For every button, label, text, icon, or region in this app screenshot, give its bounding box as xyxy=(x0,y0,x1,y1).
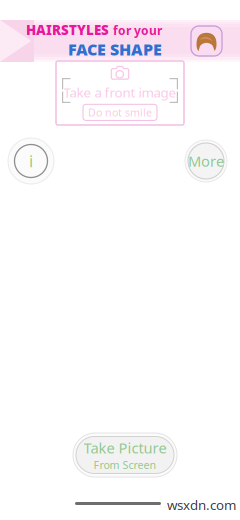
staticText: Take a front image xyxy=(63,84,176,101)
staticText: FACE SHAPE xyxy=(68,39,162,60)
button[interactable]: Hairstyle preview xyxy=(191,26,222,56)
staticText: More xyxy=(188,151,224,171)
staticText: Take Picture xyxy=(83,438,166,458)
staticText: From Screen xyxy=(93,458,156,472)
staticText: Do not smile xyxy=(88,105,152,119)
staticText: for your xyxy=(113,22,162,38)
button[interactable]: Take Picture xyxy=(73,433,177,477)
staticText: i xyxy=(29,150,33,172)
staticText: wsxdn.com xyxy=(167,496,236,514)
staticText: HAIRSTYLES xyxy=(26,21,109,39)
button[interactable]: Info xyxy=(8,138,54,184)
button[interactable]: More xyxy=(185,140,227,182)
